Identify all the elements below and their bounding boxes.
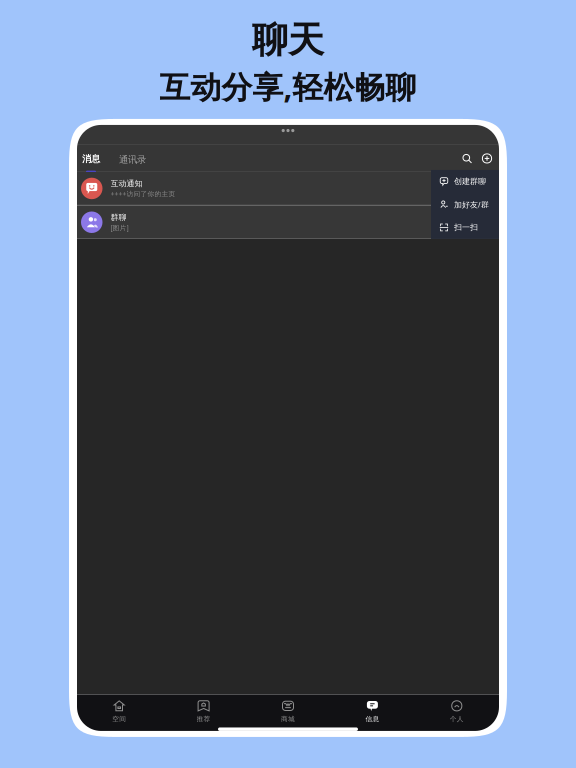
staticText: 加好友/群 [454,199,489,210]
staticText: 群聊 [110,212,126,222]
staticText: 通讯录 [119,154,146,165]
staticText: 推荐 [197,715,211,723]
staticText: 聊天 [252,18,324,62]
button[interactable]: 消息 [81,145,101,172]
button[interactable]: 群聊 [77,206,499,239]
button[interactable]: 扫一扫 [431,216,499,239]
button[interactable]: 个人 [415,698,499,724]
staticText: [图片] [110,223,128,232]
staticText: 互动分享,轻松畅聊 [159,66,416,107]
staticText: ++++访问了你的主页 [110,189,175,198]
button[interactable]: 通讯录 [119,145,146,172]
button[interactable]: Search [460,151,474,165]
staticText: 创建群聊 [454,176,486,186]
button[interactable]: 加好友/群 [431,193,499,216]
staticText: 商城 [281,715,295,723]
button[interactable]: 创建群聊 [431,170,499,193]
button[interactable]: 推荐 [161,698,246,724]
staticText: 信息 [365,715,379,723]
staticText: 互动通知 [110,179,142,188]
staticText: 个人 [450,715,464,723]
staticText: 扫一扫 [454,222,478,232]
staticText: 消息 [82,153,100,165]
button[interactable]: 空间 [77,698,161,724]
button[interactable]: 信息 [330,698,415,724]
staticText: 空间 [112,715,126,723]
button[interactable]: 互动通知 [77,172,499,205]
button[interactable]: 商城 [246,698,330,724]
button[interactable]: Add [480,151,494,165]
